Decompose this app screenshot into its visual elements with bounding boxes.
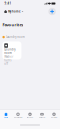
button[interactable]: Discover bbox=[24, 110, 36, 121]
staticText: Cameras bbox=[38, 117, 45, 118]
staticText: Laundry room bbox=[6, 35, 24, 39]
button[interactable]: Settings bbox=[48, 110, 60, 121]
button[interactable]: Laundry room bbox=[2, 41, 21, 59]
staticText: My home bbox=[8, 10, 21, 13]
button[interactable]: Cameras bbox=[36, 110, 48, 121]
button[interactable]: Home bbox=[0, 110, 12, 121]
button[interactable]: Automation bbox=[12, 110, 24, 121]
staticText: Favourites bbox=[2, 22, 23, 27]
staticText: Discover bbox=[26, 117, 33, 118]
staticText: 9:41 bbox=[4, 2, 11, 5]
staticText: Settings bbox=[50, 117, 57, 118]
staticText: off bbox=[4, 62, 8, 65]
staticText: Washer turns bbox=[4, 55, 13, 62]
staticText: Laundry room bbox=[4, 48, 15, 55]
staticText: Home bbox=[4, 117, 8, 118]
button[interactable]: Add bbox=[48, 8, 56, 15]
button[interactable]: My home bbox=[4, 8, 23, 14]
staticText: Automation bbox=[13, 117, 22, 118]
